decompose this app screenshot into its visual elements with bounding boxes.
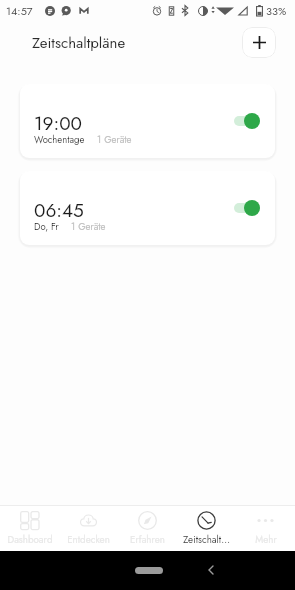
button[interactable]: Add schedule bbox=[242, 27, 276, 58]
button[interactable]: Toggle schedule bbox=[234, 111, 260, 131]
button[interactable]: 19:00 bbox=[20, 84, 275, 158]
button[interactable]: Erfahren bbox=[118, 505, 177, 551]
staticText: 06:45 bbox=[34, 197, 84, 224]
button[interactable]: Dashboard bbox=[0, 505, 59, 551]
staticText: 1 Geräte bbox=[97, 133, 132, 147]
button[interactable]: 06:45 bbox=[20, 171, 275, 245]
button[interactable]: Zeitschalt… bbox=[177, 505, 236, 551]
staticText: Do, Fr bbox=[34, 220, 59, 234]
button[interactable]: Mehr bbox=[236, 505, 295, 551]
staticText: Zeitschaltpläne bbox=[32, 32, 126, 54]
button[interactable]: Home bbox=[135, 567, 163, 574]
staticText: Dashboard bbox=[7, 533, 53, 547]
button[interactable]: Toggle schedule bbox=[234, 198, 260, 218]
staticText: 1 Geräte bbox=[71, 220, 106, 234]
staticText: 33% bbox=[266, 3, 287, 19]
staticText: Zeitschalt… bbox=[183, 533, 230, 547]
staticText: 14:57 bbox=[6, 3, 33, 19]
staticText: Erfahren bbox=[130, 533, 165, 547]
staticText: Entdecken bbox=[67, 533, 110, 547]
button[interactable]: Entdecken bbox=[59, 505, 118, 551]
staticText: 19:00 bbox=[34, 110, 82, 137]
staticText: Wochentage bbox=[34, 133, 85, 147]
staticText: Mehr bbox=[255, 533, 277, 547]
button[interactable]: Back bbox=[203, 562, 219, 578]
